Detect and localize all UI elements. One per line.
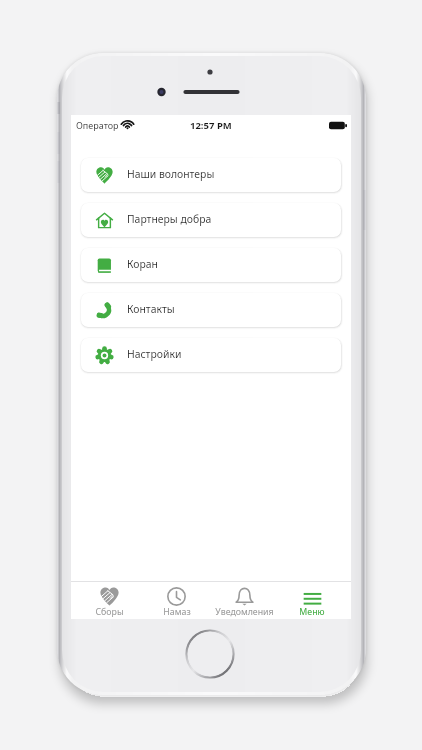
staticText: Намаз [163,606,191,618]
button[interactable]: Контакты [81,293,341,327]
staticText: Меню [299,606,325,618]
button[interactable]: Меню [278,582,346,619]
staticText: Коран [127,257,158,271]
button[interactable]: Партнеры добра [81,203,341,237]
staticText: Наши волонтеры [127,167,215,181]
staticText: Партнеры добра [127,212,212,226]
button[interactable]: Намаз [143,582,210,619]
button[interactable]: Сборы [76,582,143,619]
staticText: Контакты [127,302,175,316]
staticText: Оператор [76,119,119,131]
button[interactable]: Коран [81,248,341,282]
button[interactable]: Наши волонтеры [81,158,341,192]
button[interactable]: Настройки [81,338,341,372]
button[interactable]: Уведомления [210,582,278,619]
staticText: Сборы [95,606,124,618]
staticText: Уведомления [215,606,274,618]
staticText: Настройки [127,347,182,361]
staticText: 12:57 PM [190,119,232,132]
